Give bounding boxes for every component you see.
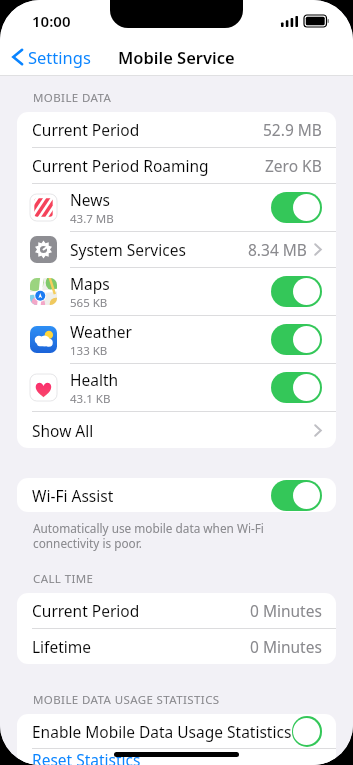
staticText: 43.7 MB [70,211,114,227]
staticText: System Services [70,239,186,260]
button[interactable]: Maps [17,268,336,315]
button[interactable]: Enable Mobile Data Usage Statistics [17,714,336,748]
button[interactable]: Toggle Weather mobile data [271,324,322,355]
staticText: News [70,189,110,210]
staticText: Health [70,369,119,390]
button[interactable]: Settings [0,42,101,72]
staticText: MOBILE DATA USAGE STATISTICS [33,692,220,708]
staticText: Current Period [32,119,140,140]
staticText: 0 Minutes [250,636,322,657]
staticText: 43.1 KB [70,391,111,407]
button[interactable]: Show All [17,412,336,448]
staticText: 0 Minutes [250,600,322,621]
button[interactable]: Wi-Fi Assist [17,478,336,512]
button[interactable]: Toggle News mobile data [271,192,322,223]
button[interactable]: Health [17,364,336,411]
staticText: Mobile Service [118,46,235,68]
button[interactable]: Current Period [17,112,336,147]
button[interactable]: Current Period Roaming [17,148,336,183]
staticText: Enable Mobile Data Usage Statistics [32,721,292,742]
staticText: 10:00 [32,11,71,31]
button[interactable]: Toggle Maps mobile data [271,276,322,307]
staticText: Weather [70,321,132,342]
staticText: 8.34 MB [248,239,307,260]
staticText: Automatically use mobile data when Wi-Fi… [33,520,323,551]
staticText: Maps [70,273,110,294]
button[interactable]: Toggle mobile data usage statistics [292,716,322,747]
staticText: MOBILE DATA [33,90,112,106]
staticText: Zero KB [265,155,322,176]
button[interactable]: Toggle Wi-Fi Assist [271,480,322,511]
button[interactable]: Toggle Health mobile data [271,372,322,403]
staticText: Current Period [32,600,140,621]
button[interactable]: Reset Statistics [17,749,336,765]
staticText: Lifetime [32,636,92,657]
staticText: 565 KB [70,295,108,311]
staticText: Current Period Roaming [32,155,209,176]
staticText: 52.9 MB [263,119,322,140]
button[interactable]: Weather [17,316,336,363]
staticText: Settings [28,46,91,68]
button[interactable]: News [17,184,336,231]
staticText: 133 KB [70,343,108,359]
button[interactable]: Current Period [17,593,336,628]
staticText: Reset Statistics [32,749,141,765]
staticText: Wi-Fi Assist [32,485,114,506]
staticText: Show All [32,420,94,441]
button[interactable]: Lifetime [17,629,336,664]
button[interactable]: System Services [17,232,336,267]
staticText: CALL TIME [33,571,94,587]
